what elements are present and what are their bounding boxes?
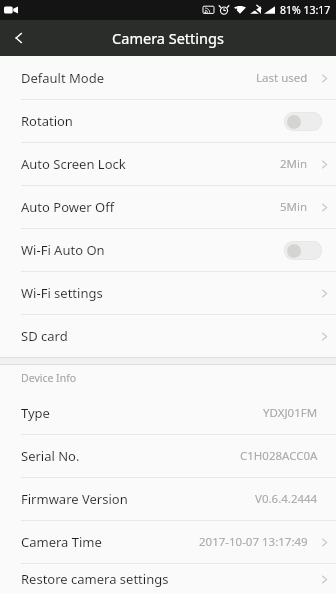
staticText: Camera Settings bbox=[112, 28, 224, 48]
staticText: Serial No. bbox=[21, 447, 240, 465]
staticText: V0.6.4.2444 bbox=[255, 491, 318, 507]
staticText: Wi-Fi settings bbox=[21, 284, 312, 302]
staticText: Type bbox=[21, 404, 263, 422]
button[interactable]: Toggle bbox=[284, 112, 322, 131]
button[interactable]: Default Mode bbox=[0, 56, 336, 99]
staticText: Device Info bbox=[21, 371, 77, 385]
button[interactable]: Auto Power Off bbox=[0, 185, 336, 228]
staticText: C1H028ACC0A bbox=[240, 448, 318, 464]
staticText: Restore camera settings bbox=[21, 570, 312, 588]
button[interactable]: Auto Screen Lock bbox=[0, 142, 336, 185]
button[interactable]: Toggle bbox=[284, 241, 322, 260]
button[interactable]: Firmware Version bbox=[0, 477, 336, 520]
staticText: YDXJ01FM bbox=[263, 405, 318, 421]
button[interactable]: Wi-Fi Auto On bbox=[0, 228, 336, 271]
staticText: Rotation bbox=[21, 112, 284, 130]
button[interactable]: Type bbox=[0, 391, 336, 434]
staticText: Firmware Version bbox=[21, 490, 255, 508]
staticText: Auto Screen Lock bbox=[21, 155, 280, 173]
staticText: Default Mode bbox=[21, 69, 256, 87]
button[interactable]: Wi-Fi settings bbox=[0, 271, 336, 314]
button[interactable]: Restore camera settings bbox=[0, 563, 336, 594]
staticText: Auto Power Off bbox=[21, 198, 280, 216]
staticText: 2Min bbox=[280, 156, 308, 172]
staticText: Camera Time bbox=[21, 533, 199, 551]
staticText: SD card bbox=[21, 327, 312, 345]
staticText: 2017-10-07 13:17:49 bbox=[199, 534, 308, 550]
staticText: 81% 13:17 bbox=[280, 3, 331, 17]
button[interactable]: Rotation bbox=[0, 99, 336, 142]
staticText: 5Min bbox=[280, 199, 308, 215]
button[interactable]: Back bbox=[0, 20, 38, 56]
button[interactable]: Serial No. bbox=[0, 434, 336, 477]
staticText: Last used bbox=[256, 70, 308, 86]
staticText: Wi-Fi Auto On bbox=[21, 241, 284, 259]
button[interactable]: Camera Time bbox=[0, 520, 336, 563]
button[interactable]: SD card bbox=[0, 314, 336, 357]
